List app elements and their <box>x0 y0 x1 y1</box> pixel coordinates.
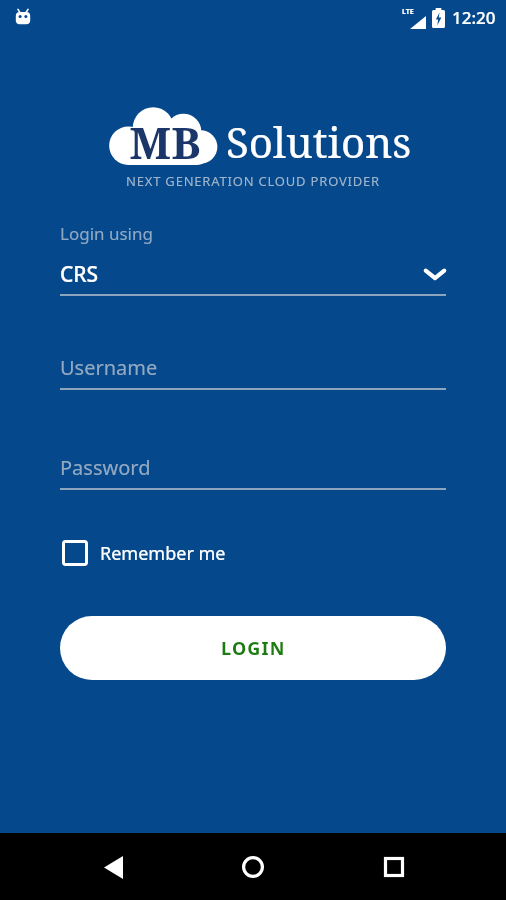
staticText: MB <box>119 112 211 172</box>
staticText: Remember me <box>100 541 226 566</box>
staticText: NEXT GENERATION CLOUD PROVIDER <box>0 172 506 190</box>
button[interactable]: Username <box>60 352 446 390</box>
button[interactable]: Recent apps <box>366 839 422 895</box>
button[interactable]: Home <box>225 839 281 895</box>
button[interactable]: Password <box>60 452 446 490</box>
staticText: 12:20 <box>452 6 496 29</box>
staticText: LOGIN <box>221 636 286 661</box>
staticText: LTE <box>402 7 414 17</box>
button[interactable]: Back <box>85 839 141 895</box>
staticText: CRS <box>60 260 424 289</box>
other: Open login type dropdown <box>424 267 446 281</box>
staticText: Login using <box>60 222 153 245</box>
staticText: Password <box>60 454 151 481</box>
staticText: Solutions <box>226 113 412 170</box>
staticText: Username <box>60 354 158 381</box>
button[interactable]: CRS <box>60 257 446 296</box>
button[interactable]: Remember me <box>60 536 228 570</box>
button[interactable]: LOGIN <box>60 616 446 680</box>
